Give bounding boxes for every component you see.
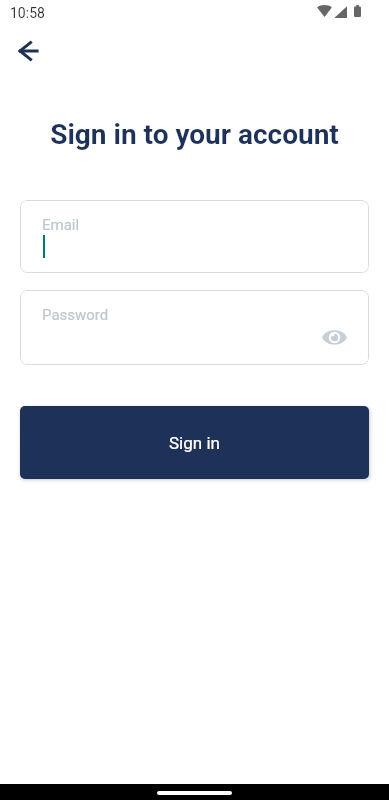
staticText: Password: [42, 306, 109, 324]
staticText: Sign in: [169, 433, 220, 453]
button[interactable]: Password: [20, 290, 369, 365]
staticText: Email: [42, 216, 80, 234]
staticText: 10:58: [10, 5, 45, 21]
button[interactable]: Show password: [314, 317, 354, 357]
staticText: Sign in to your account: [0, 118, 389, 151]
button[interactable]: Email: [20, 200, 369, 273]
button[interactable]: Back: [5, 27, 53, 75]
button[interactable]: Sign in: [20, 406, 369, 479]
